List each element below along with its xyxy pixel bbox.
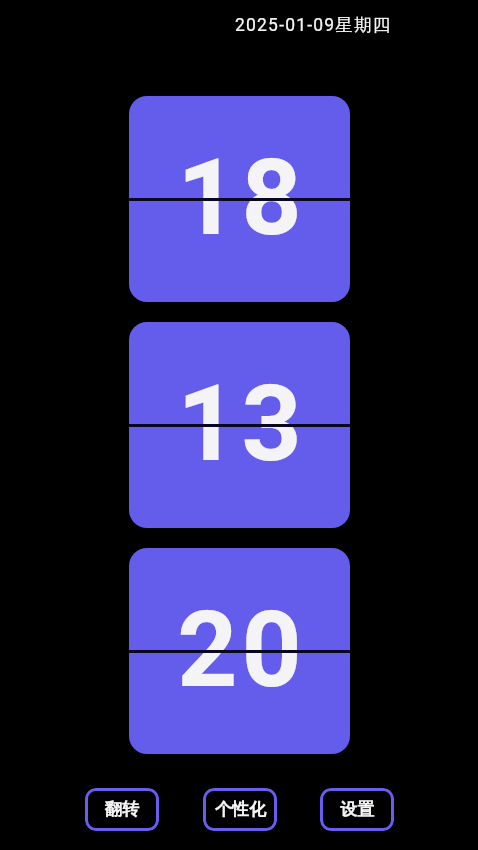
button[interactable]: Flip digit 13 [129,322,350,528]
button[interactable]: 翻转 [85,788,159,831]
button[interactable]: Flip digit 18 [129,96,350,302]
button[interactable]: 个性化 [203,788,277,831]
staticText: 18 [177,137,306,260]
button[interactable]: Flip digit 20 [129,548,350,754]
staticText: 20 [177,589,306,712]
staticText: 13 [177,363,306,486]
button[interactable]: 设置 [320,788,394,831]
staticText: 设置 [340,799,374,820]
staticText: 个性化 [215,799,266,820]
staticText: 2025-01-09星期四 [235,14,392,36]
staticText: 翻转 [105,799,139,820]
